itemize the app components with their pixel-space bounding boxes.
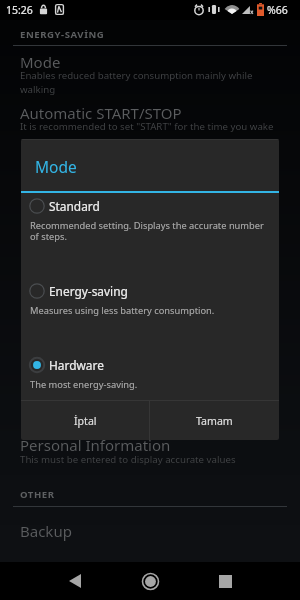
button[interactable]: Home xyxy=(139,562,161,600)
button[interactable]: Standard xyxy=(21,196,279,242)
button[interactable]: Backup xyxy=(0,513,300,543)
staticText: Standard xyxy=(49,198,100,214)
button[interactable]: Hardware xyxy=(21,355,279,391)
staticText: Mode xyxy=(35,156,77,177)
staticText: The most energy-saving. xyxy=(30,378,138,391)
staticText: 15:26 xyxy=(6,3,33,17)
staticText: Personal Information xyxy=(20,435,171,455)
staticText: Backup xyxy=(20,521,72,541)
staticText: Hardware xyxy=(49,357,104,373)
button[interactable]: Back xyxy=(64,562,86,600)
button[interactable]: Personal Information xyxy=(0,431,300,468)
staticText: Enables reduced battery consumption main… xyxy=(20,69,253,96)
button[interactable]: Mode xyxy=(0,48,300,98)
staticText: This must be entered to display accurate… xyxy=(20,453,236,466)
staticText: Tamam xyxy=(196,414,233,428)
staticText: %66 xyxy=(267,3,288,17)
button[interactable]: Energy-saving xyxy=(21,281,279,317)
staticText: İptal xyxy=(74,414,97,428)
staticText: Mode xyxy=(20,52,61,72)
button[interactable]: Automatic START/STOP xyxy=(0,99,300,135)
staticText: Measures using less battery consumption. xyxy=(30,304,215,317)
button[interactable]: İptal xyxy=(21,401,149,440)
staticText: Energy-saving xyxy=(49,283,128,299)
staticText: It is recommended to set "START" for the… xyxy=(20,120,274,133)
staticText: Automatic START/STOP xyxy=(20,103,182,123)
staticText: OTHER xyxy=(20,488,55,501)
button[interactable]: Tamam xyxy=(150,401,279,440)
button[interactable]: Recent apps xyxy=(214,562,236,600)
staticText: Recommended setting. Displays the accura… xyxy=(30,219,268,242)
staticText: ENERGY-SAVİNG xyxy=(20,28,105,41)
